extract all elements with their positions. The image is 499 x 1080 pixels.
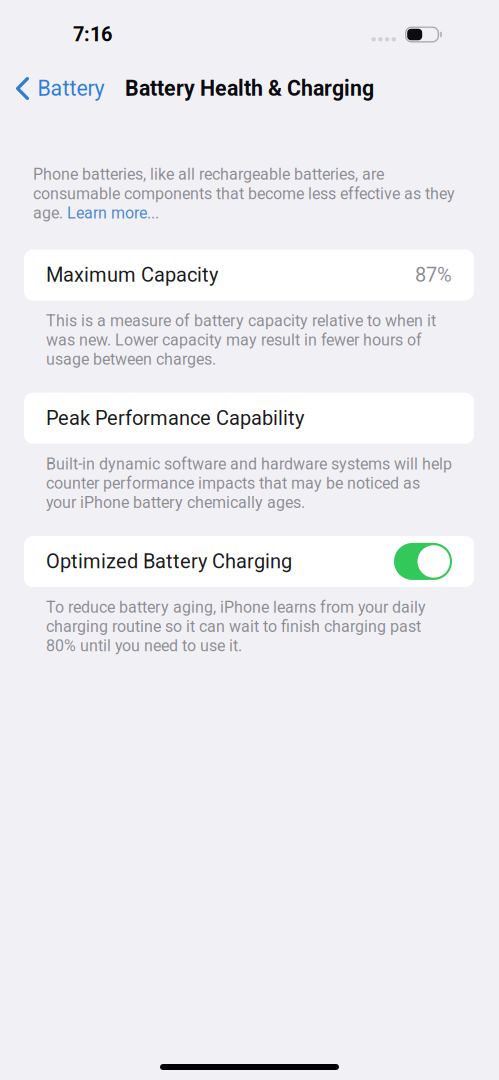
staticText: Peak Performance Capability: [46, 406, 304, 430]
staticText: Optimized Battery Charging: [46, 550, 292, 573]
staticText: 87%: [415, 263, 452, 287]
button[interactable]: Maximum Capacity: [0, 249, 499, 300]
staticText: Battery: [37, 76, 104, 101]
button[interactable]: Peak Performance Capability: [0, 393, 499, 444]
staticText: This is a measure of battery capacity re…: [46, 311, 436, 369]
staticText: Learn more: [67, 204, 147, 222]
staticText: To reduce battery aging, iPhone learns f…: [46, 598, 426, 655]
button[interactable]: Back to Battery: [0, 66, 114, 110]
staticText: ...: [147, 204, 159, 222]
staticText: consumable components that become less e…: [33, 184, 455, 203]
staticText: Phone batteries, like all rechargeable b…: [33, 165, 384, 184]
staticText: Maximum Capacity: [46, 263, 218, 287]
staticText: 7:16: [73, 23, 112, 46]
staticText: Built-in dynamic software and hardware s…: [46, 455, 452, 512]
button[interactable]: Learn more: [67, 204, 147, 222]
staticText: Battery Health & Charging: [125, 76, 374, 101]
staticText: age.: [33, 204, 67, 222]
button[interactable]: Optimized Battery Charging: [394, 543, 452, 580]
button[interactable]: Optimized Battery Charging: [0, 536, 499, 587]
